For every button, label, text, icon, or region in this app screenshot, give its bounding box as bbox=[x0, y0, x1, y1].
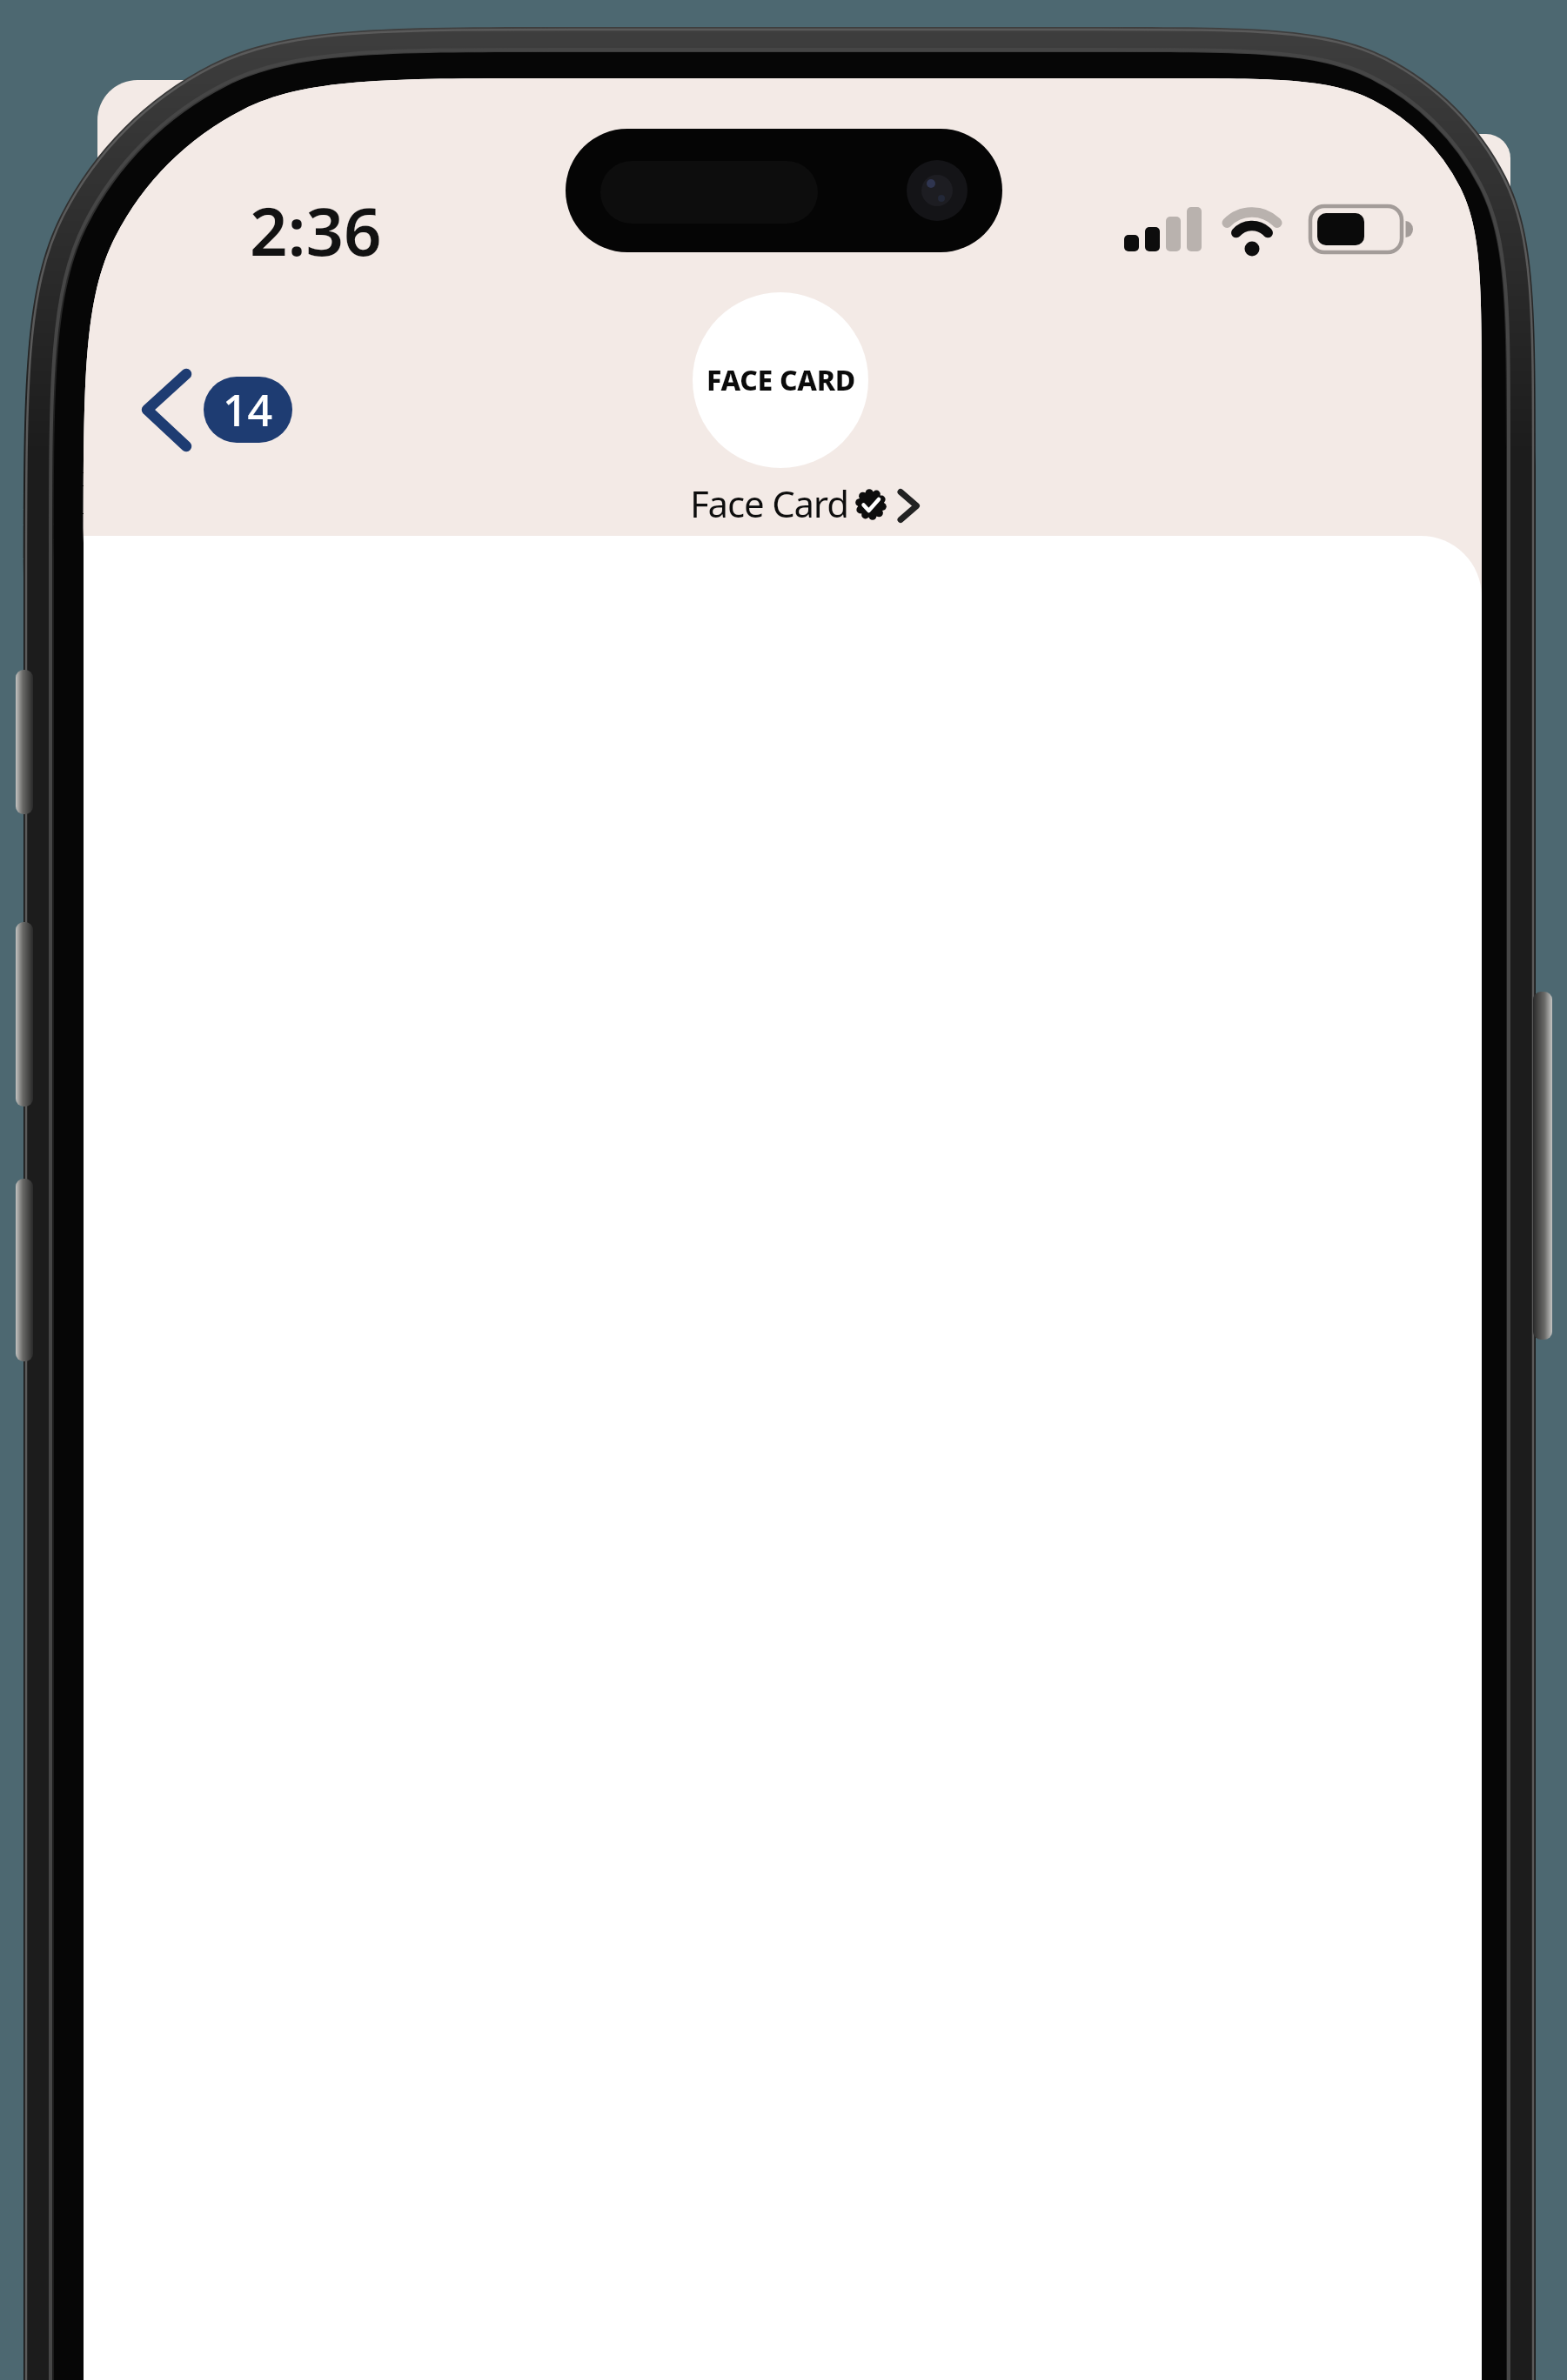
button[interactable] bbox=[131, 361, 313, 461]
staticText: 14 bbox=[223, 380, 273, 439]
button[interactable] bbox=[687, 474, 931, 531]
button[interactable]: 14 bbox=[204, 377, 292, 443]
button[interactable]: FACE CARD bbox=[693, 292, 868, 468]
staticText: FACE CARD bbox=[706, 361, 855, 399]
staticText: 2:36 bbox=[250, 185, 382, 276]
staticText: Face Card bbox=[690, 478, 848, 528]
